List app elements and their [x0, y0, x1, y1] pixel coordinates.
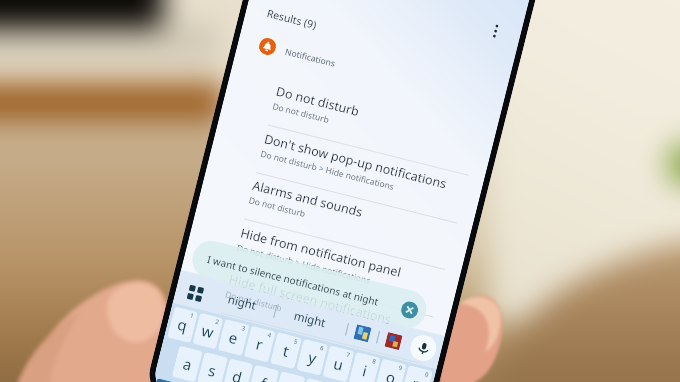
button[interactable]: d: [222, 358, 253, 382]
button[interactable]: s: [197, 352, 228, 382]
button[interactable]: u: [322, 345, 354, 382]
staticText: e: [227, 327, 240, 348]
button[interactable]: g: [274, 371, 306, 382]
staticText: Do not disturb > Hide notifications: [259, 148, 396, 193]
button[interactable]: Sticker one: [353, 324, 372, 342]
button[interactable]: f: [247, 365, 279, 382]
staticText: 6: [319, 344, 325, 353]
staticText: Do not disturb > Hide notifications: [236, 242, 372, 287]
button[interactable]: Keyboard toolbar: [184, 280, 206, 302]
button[interactable]: Don't show pop-up notifications: [208, 113, 484, 227]
button[interactable]: q: [167, 306, 198, 343]
staticText: 3: [241, 324, 246, 333]
staticText: Don't show pop-up notifications: [262, 130, 449, 193]
staticText: t: [281, 340, 292, 361]
button[interactable]: Clear text: [399, 300, 420, 320]
staticText: 7: [345, 351, 351, 359]
staticText: w: [200, 320, 216, 342]
button[interactable]: r: [244, 325, 276, 363]
button[interactable]: Alarms and sounds: [197, 160, 472, 274]
button[interactable]: Shift: [153, 378, 193, 382]
button[interactable]: Hide from notification panel: [185, 208, 460, 321]
staticText: s: [206, 360, 219, 381]
staticText: u: [332, 353, 346, 375]
staticText: Alarms and sounds: [251, 177, 364, 221]
staticText: o: [384, 366, 398, 382]
staticText: f: [258, 373, 269, 382]
staticText: Do not disturb: [224, 288, 283, 314]
staticText: Notifications: [284, 46, 337, 70]
staticText: 0: [424, 370, 430, 379]
staticText: q: [175, 314, 190, 336]
staticText: d: [230, 366, 245, 382]
button[interactable]: o: [375, 358, 407, 382]
button[interactable]: t: [270, 332, 302, 369]
button[interactable]: I want to silence notifications at night: [188, 237, 430, 332]
button[interactable]: Hide full screen notifications: [173, 254, 449, 368]
staticText: r: [254, 333, 266, 355]
button[interactable]: i: [348, 352, 380, 382]
staticText: 2: [214, 318, 220, 326]
button[interactable]: Voice input: [407, 332, 439, 364]
button[interactable]: Do not disturb: [220, 66, 496, 180]
staticText: 4: [267, 331, 273, 340]
button[interactable]: More options: [482, 18, 509, 44]
button[interactable]: y: [296, 339, 328, 376]
staticText: y: [306, 347, 319, 368]
staticText: Do not disturb: [274, 83, 361, 120]
staticText: Hide full screen notifications: [227, 271, 393, 328]
staticText: 8: [372, 357, 377, 366]
staticText: Do not disturb: [248, 194, 307, 220]
staticText: might: [292, 308, 328, 331]
staticText: Hide from notification panel: [239, 224, 403, 281]
button[interactable]: h: [300, 378, 332, 382]
staticText: 9: [398, 364, 404, 372]
staticText: 1: [189, 311, 195, 320]
staticText: i: [361, 360, 369, 381]
staticText: Do not disturb: [271, 100, 330, 126]
staticText: a: [181, 353, 194, 375]
button[interactable]: w: [192, 313, 223, 349]
button[interactable]: Sticker two: [384, 332, 403, 350]
staticText: Results (9): [265, 6, 318, 32]
staticText: night: [226, 291, 258, 314]
button[interactable]: e: [218, 319, 250, 356]
button[interactable]: p: [401, 365, 433, 382]
button[interactable]: a: [172, 346, 203, 382]
staticText: p: [410, 373, 425, 382]
staticText: 5: [293, 337, 299, 346]
staticText: I want to silence notifications at night: [206, 252, 381, 309]
